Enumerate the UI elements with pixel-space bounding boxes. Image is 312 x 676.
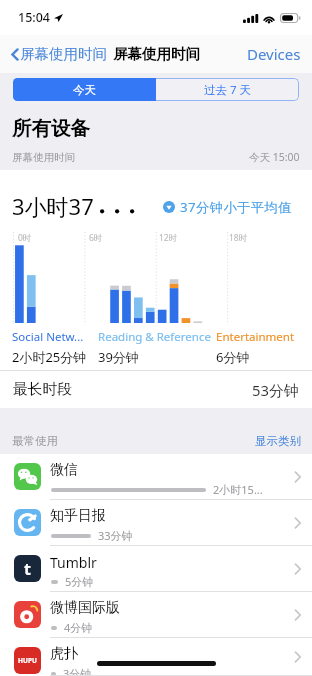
button[interactable]: t: [0, 546, 312, 592]
staticText: 知乎日报: [50, 507, 106, 525]
button[interactable]: HUPU: [0, 638, 312, 676]
staticText: 3分钟: [63, 666, 92, 676]
staticText: Social Netw...: [12, 329, 84, 345]
staticText: Entertainment: [216, 329, 295, 345]
staticText: 5分钟: [65, 574, 94, 589]
staticText: 所有设备: [12, 116, 90, 141]
button[interactable]: 知乎日报: [0, 500, 312, 546]
button[interactable]: 显示类别: [255, 434, 301, 448]
staticText: 6分钟: [216, 348, 250, 366]
staticText: 屏幕使用时间: [20, 45, 107, 63]
staticText: 4分钟: [64, 620, 93, 635]
staticText: Devices: [247, 44, 301, 64]
staticText: 2小时15...: [213, 482, 263, 497]
staticText: 37分钟小于平均值: [180, 198, 292, 216]
staticText: 2小时25分钟: [12, 348, 87, 366]
staticText: Reading & Reference: [98, 329, 211, 345]
staticText: 0时: [18, 232, 32, 244]
staticText: 39分钟: [98, 348, 139, 366]
button[interactable]: 过去 7 天: [156, 78, 299, 101]
staticText: t: [24, 558, 31, 580]
staticText: 虎扑: [50, 645, 78, 663]
staticText: 3小时37: [12, 191, 94, 221]
button[interactable]: 微信: [0, 454, 312, 500]
button[interactable]: 最长时段: [0, 371, 312, 408]
staticText: Tumblr: [50, 553, 97, 572]
staticText: 53分钟: [252, 380, 299, 400]
button[interactable]: 今天: [13, 78, 156, 101]
staticText: 最长时段: [13, 380, 73, 399]
button[interactable]: Devices: [247, 35, 312, 73]
staticText: 微博国际版: [50, 599, 120, 617]
staticText: 12时: [159, 232, 178, 244]
button[interactable]: 微博国际版: [0, 592, 312, 638]
button[interactable]: 屏幕使用时间: [0, 35, 111, 73]
staticText: 18时: [229, 232, 248, 244]
staticText: 今天 15:00: [249, 150, 300, 164]
staticText: 33分钟: [98, 528, 133, 543]
staticText: HUPU: [18, 656, 37, 665]
staticText: 今天: [73, 83, 96, 97]
staticText: 过去 7 天: [204, 82, 252, 98]
staticText: 屏幕使用时间: [12, 151, 75, 164]
staticText: 微信: [50, 461, 78, 479]
staticText: 15:04: [18, 9, 51, 26]
staticText: 最常使用: [12, 434, 58, 448]
staticText: 6时: [89, 232, 103, 244]
staticText: 屏幕使用时间: [113, 45, 200, 63]
